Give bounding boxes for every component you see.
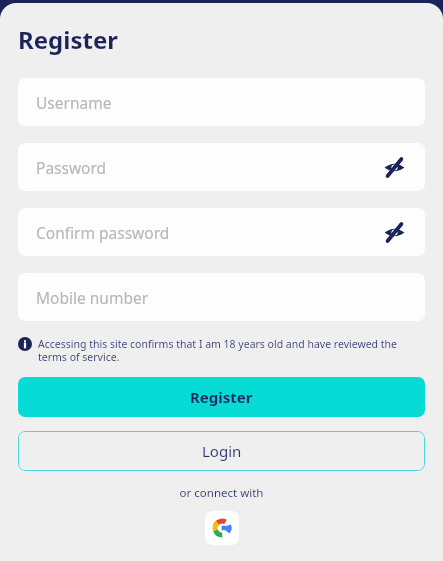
button[interactable]: Login [18, 431, 425, 471]
staticText: Username [36, 92, 112, 113]
button[interactable]: Mobile number [18, 273, 425, 321]
staticText: Mobile number [36, 287, 149, 308]
button[interactable]: Username [18, 78, 425, 126]
staticText: Confirm password [36, 222, 170, 243]
staticText: Password [36, 157, 107, 178]
button[interactable]: Register [18, 377, 425, 417]
button[interactable]: Show confirm password [381, 219, 407, 245]
staticText: or connect with [18, 485, 425, 501]
staticText: Register [18, 23, 118, 56]
button[interactable]: Confirm password [18, 208, 425, 256]
staticText: Accessing this site confirms that I am 1… [38, 337, 425, 364]
button[interactable]: Show password [381, 154, 407, 180]
button[interactable]: Password [18, 143, 425, 191]
staticText: Login [202, 441, 242, 461]
staticText: Register [190, 387, 253, 407]
button[interactable]: Connect with Google [205, 511, 239, 545]
